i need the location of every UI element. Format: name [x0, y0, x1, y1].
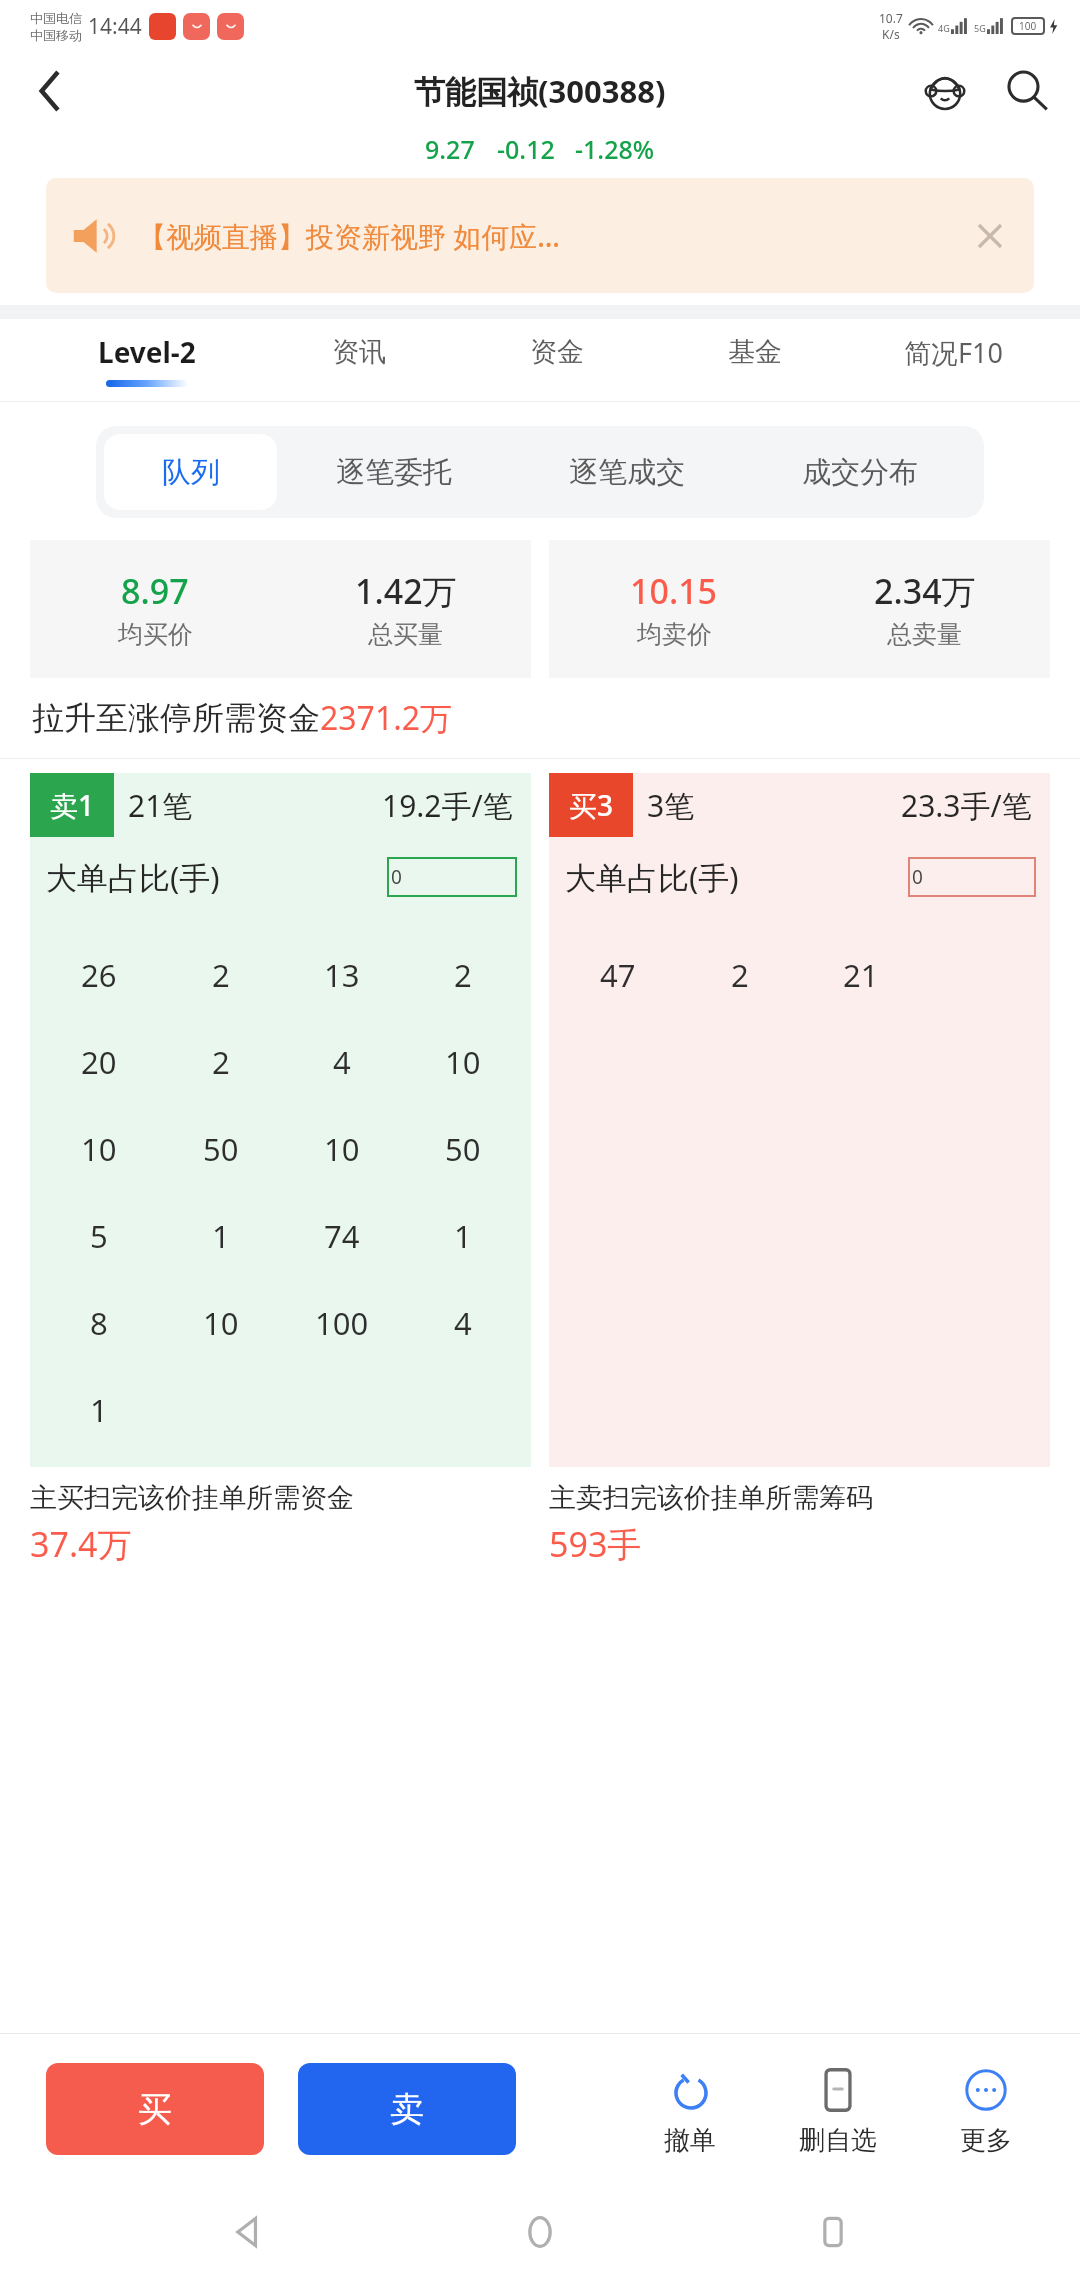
staticText: Level-2	[98, 333, 196, 371]
staticText: 【视频直播】投资新视野 如何应…	[138, 217, 964, 255]
staticText: 50	[203, 1128, 239, 1170]
staticText: 10	[203, 1302, 239, 1344]
staticText: 资讯	[332, 335, 386, 369]
button[interactable]: 10.15	[549, 540, 1050, 678]
button[interactable]: 卖1	[30, 773, 531, 1467]
staticText: 2371.2万	[320, 696, 453, 740]
staticText: 买3	[569, 786, 614, 824]
staticText: 大单占比(手)	[46, 856, 220, 898]
staticText: 拉升至涨停所需资金	[32, 698, 320, 738]
staticText: 4	[454, 1302, 472, 1344]
staticText: 8.97	[121, 568, 189, 614]
staticText: 10	[81, 1128, 117, 1170]
staticText: 47	[600, 954, 636, 996]
staticText: 0	[912, 864, 923, 890]
staticText: 8	[90, 1302, 108, 1344]
staticText: 卖1	[50, 786, 95, 824]
staticText: 20	[81, 1041, 117, 1083]
button[interactable]: 【视频直播】投资新视野 如何应…	[46, 178, 1034, 293]
staticText: 逐笔委托	[336, 454, 452, 491]
staticText: 100	[315, 1302, 369, 1344]
staticText: 1	[90, 1389, 108, 1431]
staticText: 5G	[974, 22, 986, 34]
button[interactable]: 删自选	[784, 2062, 892, 2157]
button[interactable]: 搜索	[996, 60, 1058, 122]
staticText: 10	[445, 1041, 481, 1083]
staticText: 19.2手/笔	[382, 785, 513, 826]
staticText: 更多	[960, 2124, 1012, 2157]
staticText: 1.42万	[355, 568, 457, 614]
button[interactable]: 关闭	[964, 210, 1016, 262]
button[interactable]: 撤单	[636, 2062, 744, 2157]
staticText: 23.3手/笔	[901, 785, 1032, 826]
staticText: 卖	[390, 2088, 424, 2131]
staticText: 2	[212, 954, 230, 996]
button[interactable]: 买	[46, 2063, 264, 2155]
staticText: 3笔	[647, 785, 695, 826]
staticText: 5	[90, 1215, 108, 1257]
staticText: -0.12	[497, 132, 555, 166]
staticText: 基金	[728, 335, 782, 369]
button[interactable]: 主页	[495, 2187, 585, 2277]
staticText: 14:44	[88, 12, 142, 41]
staticText: 1	[212, 1215, 230, 1257]
staticText: 主卖扫完该价挂单所需筹码	[549, 1481, 873, 1515]
staticText: 10.15	[630, 568, 718, 614]
staticText: 中国移动	[30, 27, 82, 43]
button[interactable]: 更多	[932, 2062, 1040, 2157]
staticText: 节能国祯(300388)	[414, 70, 666, 112]
staticText: 593手	[549, 1521, 642, 1567]
button[interactable]: 资金	[458, 319, 656, 401]
staticText: 100	[1019, 19, 1037, 33]
button[interactable]: 最近任务	[788, 2187, 878, 2277]
button[interactable]: 客服	[914, 60, 976, 122]
staticText: 均买价	[118, 619, 193, 650]
staticText: 总买量	[368, 619, 443, 650]
staticText: 逐笔成交	[569, 454, 685, 491]
staticText: 9.27	[425, 132, 475, 166]
staticText: 2	[454, 954, 472, 996]
staticText: 4G	[938, 22, 950, 34]
staticText: 2	[731, 954, 749, 996]
button[interactable]: 卖	[298, 2063, 516, 2155]
staticText: 4	[333, 1041, 351, 1083]
button[interactable]: 逐笔成交	[510, 434, 743, 510]
staticText: 10	[324, 1128, 360, 1170]
staticText: 总卖量	[887, 619, 962, 650]
button[interactable]: 成交分布	[743, 434, 976, 510]
button[interactable]: 逐笔委托	[277, 434, 510, 510]
staticText: 资金	[530, 335, 584, 369]
staticText: K/s	[882, 26, 900, 42]
button[interactable]: 买3	[549, 773, 1050, 1467]
staticText: 买	[138, 2088, 172, 2131]
staticText: 队列	[162, 454, 220, 491]
staticText: 中国电信	[30, 10, 82, 26]
staticText: 大单占比(手)	[565, 856, 739, 898]
staticText: 50	[445, 1128, 481, 1170]
staticText: 37.4万	[30, 1521, 132, 1567]
staticText: 简况F10	[904, 334, 1003, 371]
button[interactable]: 8.97	[30, 540, 531, 678]
staticText: 主买扫完该价挂单所需资金	[30, 1481, 354, 1515]
staticText: 21笔	[128, 785, 193, 826]
staticText: 撤单	[664, 2124, 716, 2157]
staticText: 均卖价	[637, 619, 712, 650]
staticText: 10.7	[879, 10, 903, 26]
staticText: 21	[843, 954, 879, 996]
staticText: 2	[212, 1041, 230, 1083]
button[interactable]: 基金	[656, 319, 854, 401]
staticText: -1.28%	[575, 132, 655, 166]
button[interactable]: 队列	[104, 434, 277, 510]
staticText: 2.34万	[874, 568, 976, 614]
button[interactable]: 返回	[203, 2187, 293, 2277]
staticText: 删自选	[799, 2124, 877, 2157]
staticText: 成交分布	[802, 454, 918, 491]
staticText: 13	[324, 954, 360, 996]
staticText: 1	[454, 1215, 472, 1257]
button[interactable]: Level-2	[34, 319, 260, 401]
button[interactable]: 返回	[18, 59, 82, 123]
staticText: 74	[324, 1215, 360, 1257]
staticText: 26	[81, 954, 117, 996]
button[interactable]: 资讯	[260, 319, 458, 401]
button[interactable]: 简况F10	[854, 319, 1052, 401]
